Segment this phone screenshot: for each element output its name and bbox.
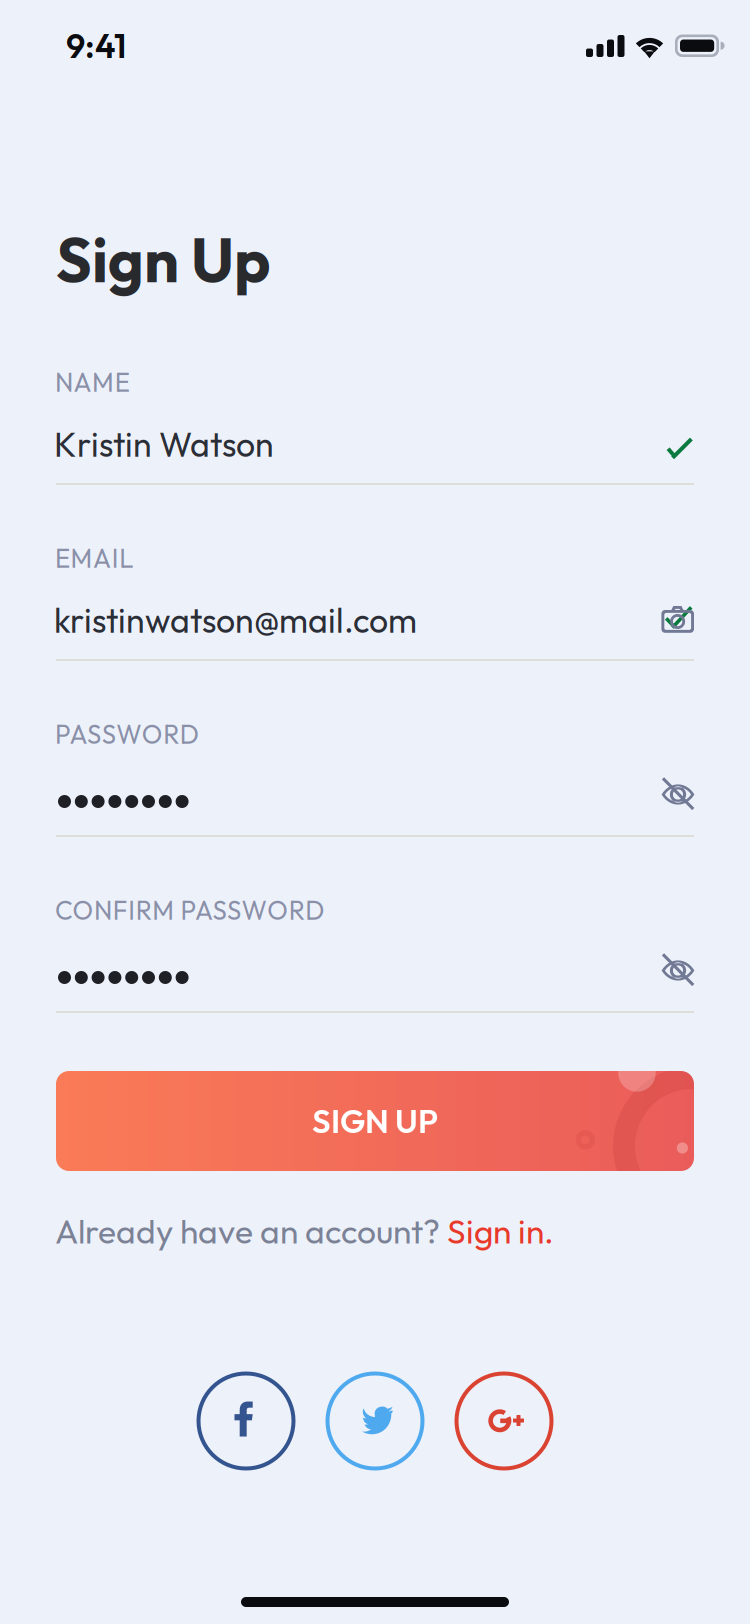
button[interactable]: SIGN UP [56,1071,694,1171]
staticText: EMAIL [55,542,133,575]
button[interactable]: Sign up with Twitter [322,1368,428,1474]
button[interactable]: Sign up with Google Plus [451,1368,557,1474]
staticText: CONFIRM PASSWORD [55,894,324,927]
staticText: Kristin Watson [54,423,274,466]
staticText: 9:41 [66,24,126,67]
staticText: Already have an account? [55,1210,447,1252]
staticText: Sign in. [447,1210,554,1252]
staticText: kristinwatson@mail.com [54,599,417,642]
staticText: SIGN UP [312,1100,438,1142]
button[interactable]: Sign in. [447,1210,554,1252]
button[interactable]: Sign up with Facebook [193,1368,299,1474]
staticText: Sign Up [56,221,270,298]
staticText: PASSWORD [55,718,199,751]
staticText: NAME [55,366,130,399]
